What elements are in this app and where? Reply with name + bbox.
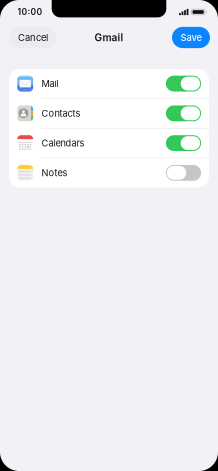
staticText: Calendars — [41, 137, 84, 149]
button[interactable]: Calendars — [9, 128, 209, 158]
staticText: Notes — [41, 167, 67, 178]
button[interactable]: Notes — [9, 158, 209, 187]
button[interactable]: Cancel — [9, 27, 57, 48]
staticText: Gmail — [94, 31, 123, 44]
button[interactable]: Mail — [9, 69, 209, 98]
staticText: 10:00 — [17, 7, 42, 17]
button[interactable]: Save — [172, 27, 210, 48]
staticText: Mail — [41, 78, 58, 89]
staticText: Contacts — [41, 108, 80, 119]
staticText: Save — [180, 32, 201, 43]
staticText: Cancel — [18, 32, 48, 43]
button[interactable]: Contacts — [9, 99, 209, 128]
